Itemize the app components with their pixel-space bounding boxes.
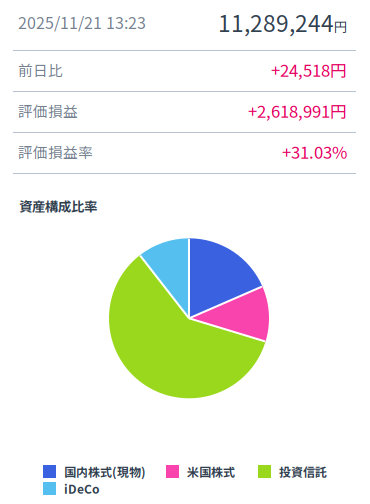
staticText: +24,518円 [271, 57, 347, 81]
button[interactable]: 投資信託 [258, 464, 327, 479]
staticText: 11,289,244 [218, 6, 334, 38]
staticText: 米国株式 [187, 463, 235, 480]
staticText: 円 [334, 16, 347, 36]
staticText: iDeCo [64, 480, 100, 497]
staticText: 2025/11/21 13:23 [18, 10, 146, 34]
staticText: 評価損益率 [18, 141, 93, 162]
button[interactable]: iDeCo [43, 481, 100, 496]
button[interactable]: 前日比 [0, 51, 370, 91]
button[interactable]: 米国株式 [166, 464, 235, 479]
staticText: +2,618,991円 [248, 98, 347, 122]
staticText: 国内株式(現物) [64, 463, 146, 480]
staticText: 前日比 [18, 59, 63, 80]
staticText: 資産構成比率 [19, 196, 97, 215]
staticText: 投資信託 [279, 463, 327, 480]
button[interactable]: 評価損益率 [0, 133, 370, 173]
staticText: +31.03% [282, 139, 347, 163]
staticText: 評価損益 [18, 100, 78, 121]
button[interactable]: 国内株式(現物) [43, 464, 146, 479]
button[interactable]: 評価損益 [0, 92, 370, 132]
